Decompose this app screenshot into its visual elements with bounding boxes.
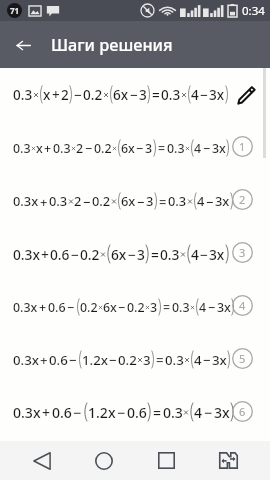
staticText: 5 — [239, 351, 246, 366]
staticText: 3 — [239, 245, 246, 260]
staticText: 0.2 — [80, 245, 100, 264]
staticText: − — [204, 403, 213, 422]
staticText: x — [36, 140, 43, 157]
staticText: 0.3 — [13, 86, 33, 104]
staticText: Шаги решения — [51, 34, 173, 56]
staticText: − — [83, 193, 91, 210]
staticText: 0.3 — [163, 403, 183, 422]
staticText: 3x — [217, 299, 231, 316]
button[interactable]: Домой — [84, 441, 124, 480]
button[interactable]: 0.3x — [0, 280, 270, 333]
button[interactable]: 0.3 — [0, 68, 270, 121]
button[interactable]: Шаг 4 — [232, 295, 253, 316]
staticText: + — [40, 193, 48, 210]
staticText: 4 — [197, 192, 205, 210]
staticText: − — [69, 351, 77, 369]
staticText: 0.3x — [13, 299, 38, 316]
staticText: x — [43, 86, 51, 104]
button[interactable]: Назад — [0, 22, 46, 68]
staticText: + — [42, 403, 51, 422]
staticText: 3x — [209, 86, 225, 104]
button[interactable]: 0.3x — [0, 386, 270, 438]
staticText: 0.6 — [127, 403, 147, 422]
button[interactable]: 0.3x — [0, 333, 270, 386]
staticText: 6x — [111, 245, 127, 264]
staticText: + — [40, 351, 48, 369]
staticText: − — [200, 245, 208, 264]
button[interactable]: 0.3x — [0, 174, 270, 227]
staticText: 0.3 — [49, 192, 68, 210]
staticText: 6x — [103, 299, 117, 316]
staticText: 0.2 — [118, 351, 137, 369]
staticText: − — [203, 140, 211, 157]
staticText: 0.3 — [161, 86, 181, 104]
staticText: = — [151, 245, 159, 264]
staticText: 0.6 — [48, 299, 66, 316]
staticText: − — [128, 245, 136, 264]
staticText: + — [39, 299, 47, 316]
button[interactable]: Недавние — [146, 441, 186, 480]
staticText: 71 — [10, 5, 20, 16]
staticText: 0.3x — [13, 403, 41, 422]
staticText: − — [117, 403, 126, 422]
staticText: − — [118, 299, 126, 316]
staticText: 6x — [121, 192, 136, 210]
staticText: 0.3 — [53, 140, 71, 157]
staticText: 0.3 — [168, 192, 187, 210]
staticText: 3 — [139, 86, 147, 104]
staticText: = — [158, 140, 166, 157]
staticText: 4 — [194, 403, 203, 422]
staticText: 6x — [121, 140, 135, 157]
staticText: 0.2 — [92, 192, 111, 210]
staticText: − — [200, 86, 208, 104]
staticText: 0.6 — [49, 351, 68, 369]
staticText: 6x — [113, 86, 129, 104]
staticText: − — [85, 140, 93, 157]
staticText: 0.3x — [13, 351, 39, 369]
staticText: 4 — [239, 298, 246, 313]
button[interactable]: Редактировать — [231, 80, 261, 110]
staticText: 0.3 — [172, 299, 190, 316]
staticText: 1 — [239, 139, 246, 154]
staticText: 0.6 — [52, 403, 72, 422]
staticText: − — [67, 299, 75, 316]
staticText: 6 — [239, 404, 246, 419]
staticText: 3 — [150, 299, 158, 316]
staticText: 1.2x — [88, 403, 116, 422]
staticText: = — [153, 403, 162, 422]
staticText: 3x — [209, 245, 225, 264]
staticText: − — [73, 403, 82, 422]
staticText: 4 — [194, 140, 202, 157]
staticText: = — [163, 299, 171, 316]
staticText: 0.3x — [13, 245, 40, 264]
staticText: − — [130, 86, 138, 104]
button[interactable]: 0.3x — [0, 227, 270, 280]
staticText: = — [159, 193, 167, 210]
staticText: 3x — [214, 403, 230, 422]
staticText: 3x — [212, 140, 226, 157]
staticText: 4 — [194, 351, 202, 369]
staticText: − — [109, 351, 117, 369]
button[interactable]: Шаг 6 — [232, 401, 253, 422]
button[interactable]: Назад — [22, 441, 62, 480]
staticText: 3 — [145, 140, 153, 157]
staticText: − — [137, 193, 145, 210]
button[interactable]: Шаг 2 — [232, 189, 253, 210]
staticText: = — [156, 351, 164, 369]
staticText: 0.2 — [127, 299, 145, 316]
staticText: − — [71, 245, 79, 264]
staticText: = — [152, 86, 160, 104]
button[interactable]: Шаг 1 — [232, 136, 253, 157]
staticText: 4 — [199, 299, 207, 316]
staticText: + — [41, 245, 49, 264]
staticText: + — [52, 86, 60, 104]
button[interactable]: 0.3 — [0, 121, 270, 174]
staticText: 4 — [191, 245, 199, 264]
button[interactable]: Переключить — [208, 441, 248, 480]
staticText: + — [44, 140, 52, 157]
staticText: 3x — [215, 192, 230, 210]
button[interactable]: Шаг 5 — [232, 348, 253, 369]
staticText: 2 — [76, 140, 84, 157]
staticText: 0.3x — [13, 192, 39, 210]
button[interactable]: Шаг 3 — [232, 242, 253, 263]
